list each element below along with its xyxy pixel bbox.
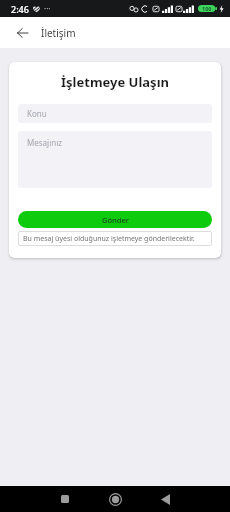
button[interactable]: Home (104, 488, 126, 510)
staticText: Konu (27, 108, 47, 119)
staticText: 2:46 (11, 3, 29, 15)
button[interactable]: Mesajınız (18, 131, 212, 188)
staticText: 100 (202, 5, 212, 12)
staticText: İletişim (41, 26, 76, 40)
button[interactable]: Back (9, 20, 35, 46)
button[interactable]: Konu (18, 104, 212, 123)
staticText: Bu mesaj üyesi olduğunuz işletmeye gönde… (23, 234, 195, 244)
staticText: Mesajınız (27, 137, 62, 148)
staticText: Gönder (102, 215, 129, 225)
button[interactable]: Back (154, 488, 176, 510)
button[interactable]: Gönder (18, 211, 212, 228)
button[interactable]: Recents (54, 488, 76, 510)
staticText: ··· (44, 3, 51, 14)
staticText: İşletmeye Ulaşın (18, 73, 212, 91)
